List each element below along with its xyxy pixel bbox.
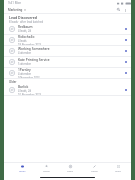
staticText: 4 attendee (18, 72, 32, 76)
staticText: 1Parsley (18, 68, 31, 72)
staticText: 9:41 Mon (8, 1, 22, 5)
staticText: Notes (91, 169, 98, 172)
staticText: Inbox (19, 169, 26, 172)
button[interactable]: Working Somewhere (4, 46, 131, 57)
button[interactable]: Barlick (4, 85, 131, 96)
staticText: 8 leads · after lead batched (9, 20, 44, 24)
staticText: Ridicchallo (18, 35, 35, 39)
staticText: Older (9, 80, 17, 84)
button[interactable]: Search (115, 6, 122, 13)
button[interactable]: More options (122, 7, 128, 13)
staticText: 10 November 2023 (18, 93, 42, 95)
staticText: 18 November 2023 (18, 43, 42, 45)
staticText: Tasks (67, 169, 74, 172)
staticText: Leads (43, 169, 50, 172)
staticText: Redbaum (18, 25, 33, 29)
staticText: 5 attendee (18, 62, 32, 66)
staticText: 4 leads, 2d (18, 29, 32, 33)
staticText: Kate Printing Service (18, 58, 50, 62)
staticText: 4 leads, 2d (18, 89, 32, 93)
staticText: 9 November 2023 (18, 76, 40, 78)
staticText: 4 attendee (18, 51, 32, 55)
staticText: Barlick (18, 85, 29, 89)
button[interactable]: Notes (82, 163, 106, 174)
button[interactable]: Leads (34, 163, 58, 174)
button[interactable]: Marketing (8, 8, 26, 12)
button[interactable]: Kate Printing Service (4, 57, 131, 68)
button[interactable]: Ridicchallo (4, 35, 131, 46)
button[interactable]: Redbaum (4, 24, 131, 35)
staticText: Marketing (8, 8, 23, 12)
staticText: Working Somewhere (18, 47, 50, 51)
button[interactable]: 1Parsley (4, 68, 131, 79)
staticText: Lead Discovered (9, 15, 37, 20)
button[interactable]: Tasks (58, 163, 82, 174)
button[interactable]: More (106, 163, 130, 174)
staticText: More (115, 169, 121, 172)
button[interactable]: Inbox (10, 163, 34, 174)
staticText: 4 leads (18, 39, 27, 43)
